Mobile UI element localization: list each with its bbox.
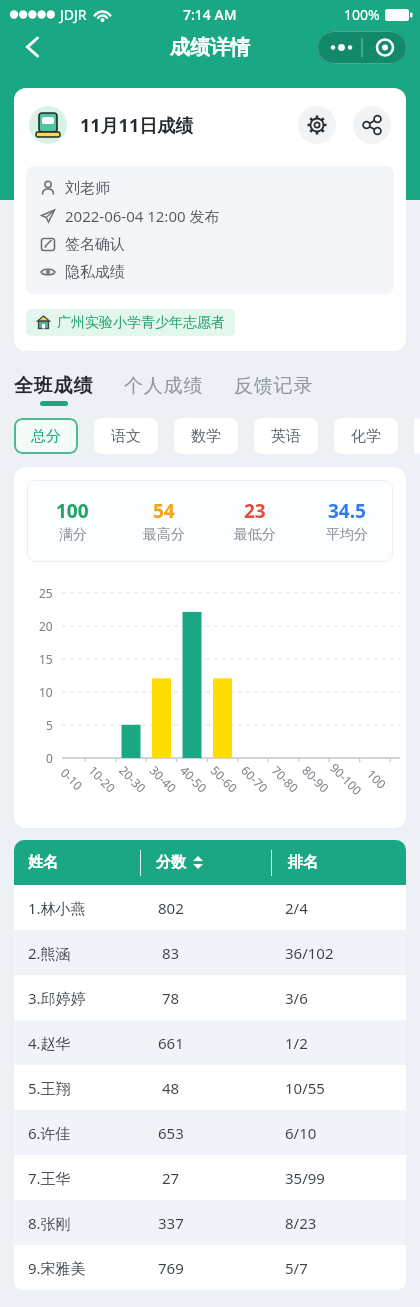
staticText: 9.宋雅美 bbox=[28, 1258, 86, 1278]
staticText: 802 bbox=[158, 898, 184, 918]
button[interactable]: 1.林小燕 bbox=[14, 885, 406, 930]
staticText: 8.张刚 bbox=[28, 1213, 71, 1233]
button[interactable]: 姓名 bbox=[14, 840, 140, 885]
staticText: 661 bbox=[158, 1033, 184, 1053]
staticText: 34.5 bbox=[328, 498, 366, 524]
staticText: 7:14 AM bbox=[183, 5, 237, 24]
staticText: 广州实验小学青少年志愿者 bbox=[57, 314, 225, 332]
staticText: 5.王翔 bbox=[28, 1078, 71, 1098]
staticText: 337 bbox=[158, 1213, 184, 1233]
staticText: 6.许佳 bbox=[28, 1123, 71, 1143]
staticText: 最高分 bbox=[143, 526, 185, 544]
button[interactable]: 分数 bbox=[141, 840, 271, 885]
staticText: 78 bbox=[162, 988, 180, 1008]
staticText: 48 bbox=[162, 1078, 180, 1098]
staticText: 2022-06-04 12:00 发布 bbox=[65, 206, 220, 226]
button[interactable]: 7.王华 bbox=[14, 1155, 406, 1200]
button[interactable]: 全班成绩 bbox=[14, 374, 94, 406]
staticText: 刘老师 bbox=[65, 179, 110, 198]
button[interactable] bbox=[353, 106, 391, 144]
staticText: 54 bbox=[153, 498, 175, 524]
button[interactable]: 反馈记录 bbox=[234, 374, 314, 398]
button[interactable]: 个人成绩 bbox=[124, 374, 204, 398]
staticText: 100% bbox=[344, 5, 380, 24]
button[interactable]: 数学 bbox=[174, 418, 238, 454]
button[interactable]: 2.熊涵 bbox=[14, 930, 406, 975]
button[interactable]: 5.王翔 bbox=[14, 1065, 406, 1110]
staticText: 最低分 bbox=[234, 526, 276, 544]
staticText: 3/6 bbox=[285, 988, 308, 1008]
button[interactable]: 4.赵华 bbox=[14, 1020, 406, 1065]
button[interactable]: 9.宋雅美 bbox=[14, 1245, 406, 1290]
button[interactable]: 8.张刚 bbox=[14, 1200, 406, 1245]
button[interactable] bbox=[14, 29, 50, 65]
staticText: 3.邱婷婷 bbox=[28, 988, 86, 1008]
button[interactable]: 语文 bbox=[94, 418, 158, 454]
staticText: 653 bbox=[158, 1123, 184, 1143]
staticText: 100 bbox=[56, 498, 89, 524]
button[interactable]: 英语 bbox=[254, 418, 318, 454]
staticText: 全班成绩 bbox=[14, 374, 94, 398]
staticText: 排名 bbox=[288, 853, 318, 872]
staticText: 2.熊涵 bbox=[28, 943, 71, 963]
staticText: 11月11日成绩 bbox=[80, 113, 194, 138]
staticText: 总分 bbox=[31, 427, 61, 446]
staticText: 5/7 bbox=[285, 1258, 308, 1278]
button[interactable] bbox=[317, 31, 407, 64]
staticText: 签名确认 bbox=[65, 235, 125, 254]
staticText: 769 bbox=[158, 1258, 184, 1278]
button[interactable]: 总分 bbox=[14, 418, 78, 454]
button[interactable] bbox=[298, 106, 336, 144]
staticText: 数学 bbox=[191, 427, 221, 446]
staticText: 化学 bbox=[351, 427, 381, 446]
button[interactable]: 排名 bbox=[272, 840, 406, 885]
staticText: 27 bbox=[162, 1168, 180, 1188]
button[interactable]: 6.许佳 bbox=[14, 1110, 406, 1155]
staticText: 23 bbox=[244, 498, 266, 524]
staticText: 2/4 bbox=[285, 898, 308, 918]
staticText: 成绩详情 bbox=[170, 35, 250, 60]
staticText: 1/2 bbox=[285, 1033, 308, 1053]
button[interactable]: 化学 bbox=[334, 418, 398, 454]
staticText: 36/102 bbox=[285, 943, 334, 963]
staticText: 6/10 bbox=[285, 1123, 317, 1143]
staticText: 平均分 bbox=[326, 526, 368, 544]
staticText: 满分 bbox=[59, 526, 87, 544]
staticText: 10/55 bbox=[285, 1078, 325, 1098]
button[interactable]: 广州实验小学青少年志愿者 bbox=[36, 309, 225, 336]
staticText: 4.赵华 bbox=[28, 1033, 71, 1053]
button[interactable]: 3.邱婷婷 bbox=[14, 975, 406, 1020]
staticText: 35/99 bbox=[285, 1168, 325, 1188]
staticText: 隐私成绩 bbox=[65, 263, 125, 282]
staticText: 83 bbox=[162, 943, 180, 963]
staticText: 语文 bbox=[111, 427, 141, 446]
staticText: JDJR bbox=[60, 5, 87, 24]
staticText: 1.林小燕 bbox=[28, 898, 86, 918]
staticText: 7.王华 bbox=[28, 1168, 71, 1188]
staticText: 8/23 bbox=[285, 1213, 317, 1233]
staticText: 英语 bbox=[271, 427, 301, 446]
staticText: 分数 bbox=[156, 853, 186, 872]
staticText: 姓名 bbox=[28, 853, 58, 872]
